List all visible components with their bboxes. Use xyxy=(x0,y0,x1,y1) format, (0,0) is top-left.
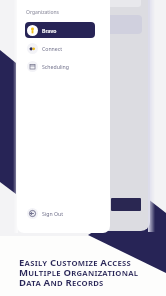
staticText: Scheduling xyxy=(42,63,69,70)
staticText: Organizations xyxy=(26,9,59,16)
staticText: Sign Out xyxy=(42,210,64,217)
staticText: MULTIPLE ORGANIZATIONAL xyxy=(19,266,139,276)
button[interactable]: Scheduling xyxy=(25,58,95,74)
button[interactable]: Connect xyxy=(25,40,95,56)
staticText: Connect xyxy=(42,45,63,52)
button[interactable]: Sign Out xyxy=(25,205,95,221)
staticText: Bravo xyxy=(42,27,57,34)
staticText: DATA AND RECORDS xyxy=(19,276,104,286)
staticText: EASILY CUSTOMIZE ACCESS xyxy=(19,256,131,266)
button[interactable]: Bravo xyxy=(25,22,95,38)
